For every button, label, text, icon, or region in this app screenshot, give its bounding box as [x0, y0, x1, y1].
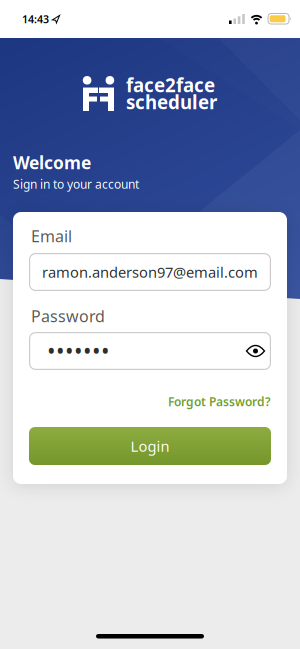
secureTextField[interactable]: pass123 [47, 336, 271, 366]
staticText: Email [31, 225, 72, 247]
staticText: Login [130, 436, 169, 456]
staticText: Password [31, 305, 105, 327]
staticText: Welcome [13, 151, 91, 174]
button[interactable]: Login [29, 427, 271, 465]
staticText: ••••••• [47, 336, 110, 366]
textField[interactable]: ramon.anderson97@email.com [42, 262, 271, 282]
staticText: Sign in to your account [13, 176, 139, 192]
staticText: scheduler [126, 90, 217, 114]
button[interactable]: Show password [246, 344, 271, 358]
staticText: Forgot Password? [168, 393, 271, 409]
staticText: ramon.anderson97@email.com [42, 262, 258, 282]
staticText: face2face [126, 73, 215, 97]
button[interactable]: Forgot Password? [168, 394, 271, 409]
staticText: 14:43 [22, 12, 49, 26]
